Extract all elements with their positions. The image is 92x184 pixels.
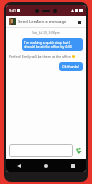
button[interactable]	[9, 144, 73, 157]
staticText: Perfect! Emily will be there at the offi…	[9, 54, 71, 59]
button[interactable]: Send	[75, 147, 83, 155]
button[interactable]: Back	[6, 159, 32, 172]
button[interactable]: More options	[75, 18, 83, 26]
button[interactable]: Recent apps	[59, 159, 86, 172]
staticText: Sat, Jul 20, 3:08pm	[32, 31, 60, 35]
button[interactable]: Ok thanks!	[59, 62, 83, 71]
button[interactable]: Send LeeAnn a message	[6, 16, 86, 27]
button[interactable]: I'm making a quick stop but I should be …	[22, 38, 83, 51]
staticText: Send LeeAnn a message	[18, 19, 75, 25]
button[interactable]: Home	[32, 159, 59, 172]
staticText: I'm making a quick stop but I should be …	[24, 40, 81, 49]
staticText: Ok thanks!	[62, 64, 80, 69]
button[interactable]: Perfect! Emily will be there at the offi…	[9, 54, 83, 59]
staticText: 9:41	[9, 8, 16, 13]
